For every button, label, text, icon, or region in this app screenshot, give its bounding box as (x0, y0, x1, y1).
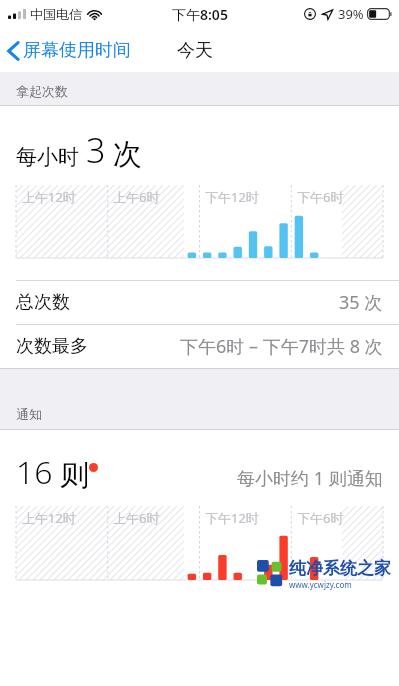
button[interactable]: 总次数 (0, 281, 399, 324)
staticText: 上午12时 (22, 188, 76, 206)
staticText: 纯净系统之家 (289, 558, 391, 579)
staticText: 下午6时 (297, 509, 344, 527)
staticText: 下午12时 (205, 188, 259, 206)
staticText: 每小时 (16, 144, 79, 170)
staticText: 上午6时 (113, 509, 160, 527)
staticText: www.ycwjzy.com (289, 579, 352, 590)
staticText: 39% (338, 5, 364, 23)
staticText: 3 (86, 127, 106, 173)
staticText: 则 (60, 457, 89, 494)
staticText: 下午12时 (205, 509, 259, 527)
staticText: 上午6时 (113, 188, 160, 206)
other: Back (7, 40, 20, 62)
button[interactable]: Back (0, 32, 139, 69)
staticText: 下午6时 (297, 188, 344, 206)
staticText: 次数最多 (16, 335, 88, 358)
staticText: 总次数 (16, 291, 70, 314)
staticText: 次 (113, 136, 142, 173)
staticText: 上午12时 (22, 509, 76, 527)
staticText: 通知 (16, 406, 42, 422)
staticText: 中国电信 (30, 6, 82, 22)
staticText: 今天 (177, 39, 213, 62)
staticText: 屏幕使用时间 (23, 39, 131, 62)
staticText: 下午6时 – 下午7时共 8 次 (180, 334, 383, 359)
staticText: 16 (16, 450, 53, 494)
staticText: 每小时约 1 则通知 (237, 466, 383, 491)
button[interactable]: 次数最多 (0, 325, 399, 368)
staticText: 拿起次数 (16, 83, 68, 99)
staticText: 35 次 (339, 290, 383, 315)
staticText: 下午8:05 (172, 5, 228, 24)
